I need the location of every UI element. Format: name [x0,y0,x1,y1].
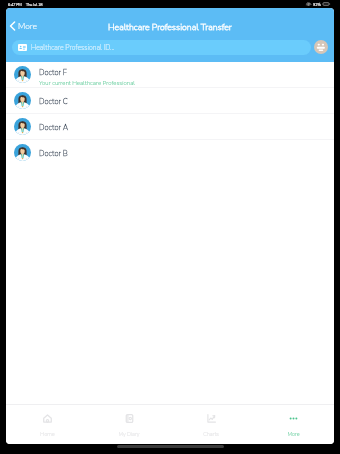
staticText: Your current Healthcare Professional [39,79,135,87]
staticText: Doctor F [39,67,67,77]
staticText: More [18,20,37,32]
staticText: 92% [313,2,321,7]
staticText: Charts [203,431,219,438]
button[interactable]: Doctor F [6,62,334,88]
button[interactable]: More [6,17,43,35]
button[interactable]: My Diary [88,405,170,444]
button[interactable]: Doctor C [6,88,334,114]
button[interactable]: Profile [314,40,328,54]
staticText: Healthcare Professional Transfer [108,21,232,33]
staticText: Home [40,431,55,438]
staticText: Healthcare Professional ID... [31,43,115,52]
staticText: Doctor C [39,96,68,106]
staticText: More [287,431,300,438]
button[interactable]: More [252,405,334,444]
button[interactable]: Doctor B [6,140,334,165]
staticText: 6:47 PM [8,2,22,7]
button[interactable]: Doctor A [6,114,334,140]
button[interactable]: Home [6,405,88,444]
staticText: My Diary [118,431,140,438]
staticText: Thu Jul 18 [26,2,43,7]
staticText: Doctor B [39,148,68,158]
staticText: Doctor A [39,122,69,132]
button[interactable]: Healthcare Professional ID... [12,40,311,55]
